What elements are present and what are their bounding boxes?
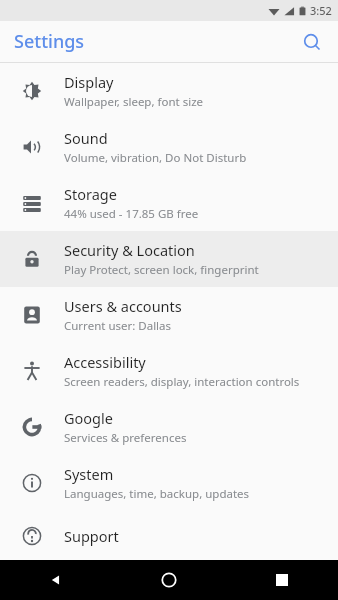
staticText: Support bbox=[64, 526, 119, 546]
staticText: Google bbox=[64, 408, 113, 428]
button[interactable]: Recent apps bbox=[225, 560, 338, 600]
staticText: Languages, time, backup, updates bbox=[64, 486, 250, 502]
staticText: Sound bbox=[64, 128, 108, 148]
button[interactable]: Google bbox=[0, 399, 338, 455]
button[interactable]: Sound bbox=[0, 119, 338, 175]
staticText: Security & Location bbox=[64, 240, 195, 260]
button[interactable]: Back bbox=[0, 560, 112, 600]
staticText: Accessibility bbox=[64, 352, 146, 372]
staticText: Services & preferences bbox=[64, 430, 187, 446]
button[interactable]: Home bbox=[112, 560, 225, 600]
button[interactable]: Users & accounts bbox=[0, 287, 338, 343]
staticText: 44% used - 17.85 GB free bbox=[64, 206, 199, 222]
staticText: Volume, vibration, Do Not Disturb bbox=[64, 150, 247, 166]
staticText: 3:52 bbox=[310, 3, 332, 18]
staticText: Storage bbox=[64, 184, 117, 204]
button[interactable]: Accessibility bbox=[0, 343, 338, 399]
staticText: Settings bbox=[14, 29, 85, 54]
button[interactable]: Support bbox=[0, 511, 338, 560]
button[interactable]: Storage bbox=[0, 175, 338, 231]
staticText: Users & accounts bbox=[64, 296, 182, 316]
button[interactable]: Security & Location bbox=[0, 231, 338, 287]
button[interactable]: System bbox=[0, 455, 338, 511]
staticText: Screen readers, display, interaction con… bbox=[64, 374, 300, 390]
staticText: Current user: Dallas bbox=[64, 318, 172, 334]
staticText: Display bbox=[64, 72, 114, 92]
staticText: Wallpaper, sleep, font size bbox=[64, 94, 204, 110]
staticText: System bbox=[64, 464, 114, 484]
staticText: Play Protect, screen lock, fingerprint bbox=[64, 262, 259, 278]
button[interactable]: Search bbox=[294, 24, 330, 60]
button[interactable]: Display bbox=[0, 63, 338, 119]
